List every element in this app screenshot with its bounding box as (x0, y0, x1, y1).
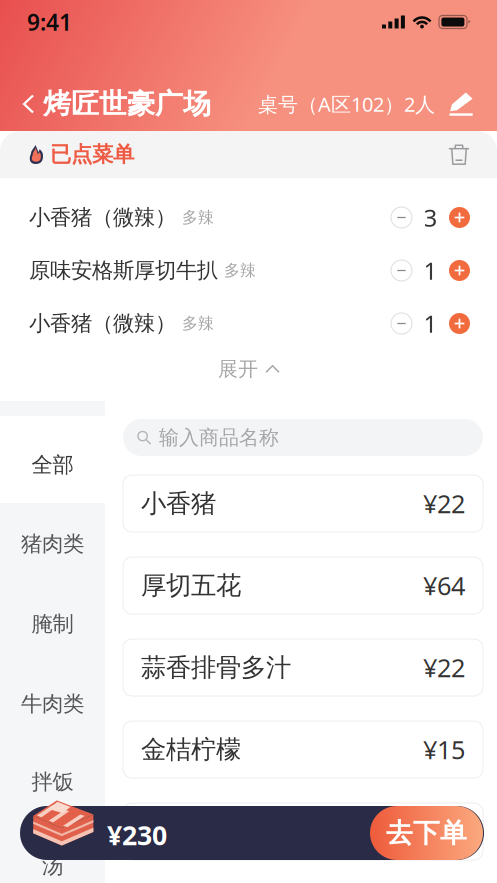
button[interactable]: 蒜香排骨多汁 (123, 639, 483, 696)
button[interactable]: 小香猪 (123, 475, 483, 532)
staticText: 厚切五花 (141, 570, 241, 601)
staticText: 小香猪 (141, 488, 216, 519)
staticText: 腌制 (31, 611, 73, 637)
staticText: 烤匠世豪广场 (43, 87, 211, 121)
staticText: 可乐 (141, 816, 191, 847)
staticText: ¥15 (423, 733, 465, 766)
button[interactable]: Clear order (448, 143, 470, 165)
staticText: 多辣 (182, 314, 214, 333)
button[interactable]: 猪肉类 (0, 533, 105, 555)
staticText: 9:41 (27, 7, 72, 37)
button[interactable]: Edit table (449, 92, 473, 116)
staticText: 3 (423, 202, 437, 233)
button[interactable]: 展开 (0, 350, 497, 388)
button[interactable]: Decrease quantity (391, 207, 412, 228)
staticText: 1 (423, 308, 437, 339)
staticText: 金桔柠檬 (141, 734, 241, 765)
staticText: ¥230 (107, 817, 167, 853)
button[interactable]: 金桔柠檬 (123, 721, 483, 778)
staticText: 小香猪（微辣） (29, 204, 176, 231)
staticText: 桌号（A区102）2人 (258, 91, 435, 117)
staticText: 蒜香排骨多汁 (141, 652, 291, 683)
staticText: 小香猪（微辣） (29, 310, 176, 337)
staticText: 汤 (42, 853, 63, 879)
staticText: 多辣 (182, 208, 214, 227)
staticText: 猪肉类 (21, 531, 84, 557)
button[interactable]: 桌号（A区102）2人 (258, 91, 435, 117)
staticText: 输入商品名称 (159, 425, 279, 450)
staticText: 牛肉类 (21, 691, 84, 717)
staticText: 原味安格斯厚切牛扒 (29, 257, 218, 284)
staticText: 拌饭 (31, 769, 73, 795)
button[interactable]: 拌饭 (0, 771, 105, 793)
staticText: 展开 (218, 357, 258, 381)
staticText: ¥22 (423, 487, 465, 520)
staticText: 全部 (31, 452, 73, 478)
staticText: ¥8 (437, 815, 465, 848)
staticText: 1 (423, 255, 437, 286)
button[interactable]: Decrease quantity (391, 260, 412, 281)
staticText: ¥22 (423, 651, 465, 684)
button[interactable]: Decrease quantity (391, 313, 412, 334)
button[interactable]: 腌制 (0, 613, 105, 635)
button[interactable]: 烤匠世豪广场 (24, 87, 211, 121)
button[interactable]: Increase quantity (449, 313, 470, 334)
staticText: 去下单 (386, 817, 467, 849)
button[interactable]: 厚切五花 (123, 557, 483, 614)
button[interactable]: 牛肉类 (0, 693, 105, 715)
staticText: ¥64 (423, 569, 465, 602)
staticText: 多辣 (224, 261, 256, 280)
button[interactable]: Increase quantity (449, 207, 470, 228)
button[interactable]: 全部 (0, 454, 105, 476)
button[interactable]: 可乐 (123, 803, 483, 860)
staticText: 已点菜单 (50, 141, 134, 168)
button[interactable]: 去下单 (370, 806, 483, 860)
button[interactable]: Increase quantity (449, 260, 470, 281)
button[interactable]: 汤 (0, 855, 105, 877)
